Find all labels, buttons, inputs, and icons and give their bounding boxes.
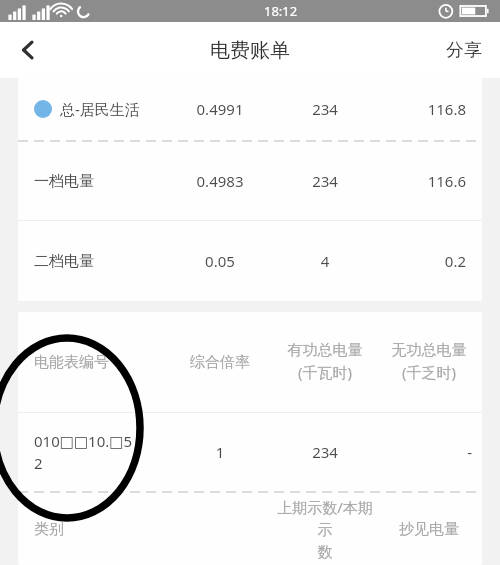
staticText: 抄见电量	[380, 520, 478, 539]
staticText: 010□□10.□5 2	[34, 431, 133, 474]
staticText: 有功总电量 (千瓦时)	[270, 341, 380, 383]
staticText: 0.4991	[170, 99, 270, 119]
button[interactable]: 一档电量	[18, 142, 482, 220]
staticText: 116.6	[380, 171, 466, 191]
staticText: 电费账单	[210, 38, 290, 63]
button[interactable]: 010□□10.□5 2	[18, 413, 482, 491]
staticText: 0.2	[380, 251, 466, 271]
button[interactable]: 分享	[438, 31, 490, 70]
staticText: 电能表编号	[34, 353, 109, 372]
staticText: 234	[270, 442, 380, 462]
staticText: 234	[270, 171, 380, 191]
staticText: 18:12	[264, 2, 298, 20]
staticText: 二档电量	[34, 252, 94, 271]
staticText: 1	[170, 442, 270, 462]
button[interactable]: 类别	[18, 493, 482, 565]
button[interactable]: 总-居民生活	[18, 78, 482, 140]
staticText: 一档电量	[34, 172, 94, 191]
staticText: 类别	[34, 520, 64, 539]
button[interactable]: 二档电量	[18, 221, 482, 301]
button[interactable]: 电能表编号	[18, 312, 482, 412]
staticText: 0.4983	[170, 171, 270, 191]
staticText: 综合倍率	[170, 353, 270, 372]
staticText: 无功总电量 (千乏时)	[380, 341, 478, 383]
staticText: 4	[270, 251, 380, 271]
button[interactable]: Back	[4, 26, 52, 74]
staticText: 分享	[446, 39, 482, 62]
staticText: -	[380, 442, 472, 462]
staticText: 0.05	[170, 251, 270, 271]
staticText: 上期示数/本期示 数	[270, 497, 380, 562]
staticText: 116.8	[380, 99, 466, 119]
staticText: 总-居民生活	[60, 99, 140, 119]
staticText: 234	[270, 99, 380, 119]
